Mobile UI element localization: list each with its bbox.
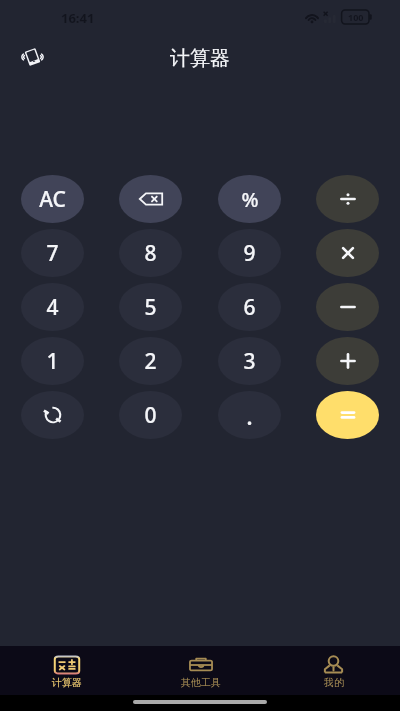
staticText: 其他工具 bbox=[181, 676, 221, 689]
button[interactable]: AC bbox=[21, 175, 84, 223]
button[interactable]: Backspace bbox=[119, 175, 182, 223]
button[interactable]: . bbox=[218, 391, 281, 439]
staticText: 3 bbox=[243, 347, 256, 376]
button[interactable]: 6 bbox=[218, 283, 281, 331]
staticText: 100 bbox=[348, 11, 364, 23]
staticText: 16:41 bbox=[61, 9, 95, 27]
staticText: 我的 bbox=[324, 676, 344, 689]
staticText: % bbox=[241, 186, 259, 213]
button[interactable]: 1 bbox=[21, 337, 84, 385]
staticText: 1 bbox=[46, 347, 59, 376]
staticText: 计算器 bbox=[52, 676, 82, 689]
button[interactable]: 我的 bbox=[267, 646, 400, 695]
staticText: 7 bbox=[46, 239, 59, 268]
staticText: . bbox=[246, 399, 253, 432]
button[interactable]: Convert bbox=[21, 391, 84, 439]
button[interactable]: Subtract bbox=[316, 283, 379, 331]
button[interactable]: 8 bbox=[119, 229, 182, 277]
button[interactable]: 2 bbox=[119, 337, 182, 385]
button[interactable]: 5 bbox=[119, 283, 182, 331]
button[interactable]: 其他工具 bbox=[134, 646, 267, 695]
button[interactable]: 9 bbox=[218, 229, 281, 277]
staticText: 9 bbox=[243, 239, 256, 268]
button[interactable]: 7 bbox=[21, 229, 84, 277]
button[interactable]: Add bbox=[316, 337, 379, 385]
staticText: 8 bbox=[144, 239, 157, 268]
button[interactable]: % bbox=[218, 175, 281, 223]
button[interactable]: 0 bbox=[119, 391, 182, 439]
button[interactable]: Divide bbox=[316, 175, 379, 223]
button[interactable]: 4 bbox=[21, 283, 84, 331]
button[interactable]: Vibration bbox=[14, 41, 50, 73]
staticText: 6 bbox=[243, 293, 256, 322]
staticText: 2 bbox=[144, 347, 157, 376]
staticText: AC bbox=[39, 185, 66, 214]
staticText: 计算器 bbox=[170, 46, 230, 71]
button[interactable]: 计算器 bbox=[0, 646, 134, 695]
staticText: 5 bbox=[144, 293, 157, 322]
staticText: 0 bbox=[144, 401, 157, 430]
button[interactable]: Equals bbox=[316, 391, 379, 439]
button[interactable]: Multiply bbox=[316, 229, 379, 277]
staticText: 4 bbox=[46, 293, 59, 322]
button[interactable]: 3 bbox=[218, 337, 281, 385]
